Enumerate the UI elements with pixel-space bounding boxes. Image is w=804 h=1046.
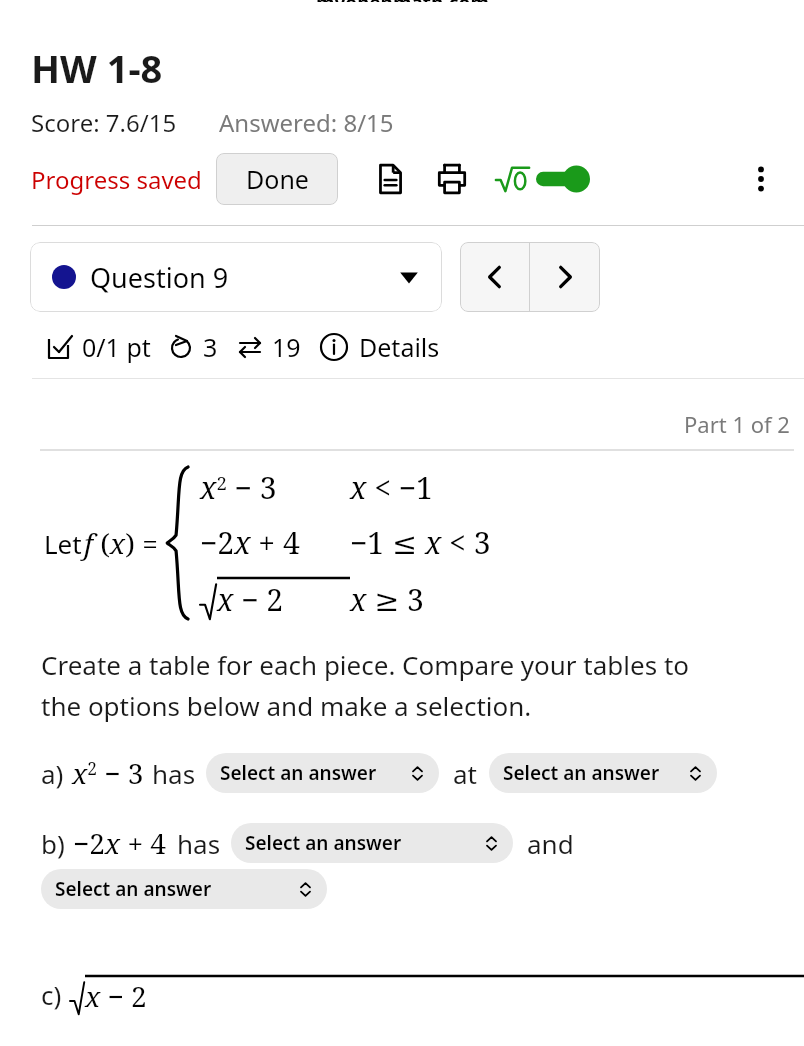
button[interactable]: Question 9 bbox=[30, 242, 442, 312]
button[interactable]: Math keyboard toggle bbox=[494, 162, 590, 196]
staticText: x − 2 bbox=[85, 977, 147, 1015]
button[interactable]: Done bbox=[216, 153, 338, 205]
staticText: 0/1 pt bbox=[82, 330, 151, 364]
staticText: Progress saved bbox=[31, 163, 202, 196]
button[interactable]: Next question bbox=[530, 242, 600, 312]
button[interactable]: Select an answer bbox=[489, 753, 717, 793]
staticText: x2 − 3 bbox=[200, 467, 277, 508]
button[interactable]: Select an answer bbox=[231, 823, 513, 863]
staticText: myopenmath.com bbox=[316, 0, 489, 2]
staticText: b) bbox=[41, 826, 65, 861]
button[interactable]: Previous question bbox=[460, 242, 529, 312]
staticText: −2x + 4 bbox=[73, 824, 167, 862]
staticText: c) bbox=[41, 977, 62, 1012]
staticText: Answered: 8/15 bbox=[219, 106, 394, 139]
staticText: and bbox=[527, 826, 574, 861]
staticText: Select an answer bbox=[503, 760, 660, 786]
staticText: Part 1 of 2 bbox=[684, 409, 790, 439]
staticText: −2x + 4 bbox=[200, 522, 300, 563]
staticText: Select an answer bbox=[245, 830, 402, 856]
staticText: has bbox=[152, 756, 196, 791]
staticText: Done bbox=[246, 162, 309, 196]
staticText: Score: 7.6/15 bbox=[31, 106, 177, 139]
staticText: HW 1-8 bbox=[31, 42, 163, 94]
button[interactable]: Select an answer bbox=[41, 869, 327, 909]
button[interactable]: Details bbox=[319, 330, 440, 364]
button[interactable]: More options bbox=[744, 162, 778, 196]
staticText: Select an answer bbox=[220, 760, 377, 786]
staticText: x ≥ 3 bbox=[350, 579, 424, 620]
staticText: Let bbox=[44, 526, 82, 561]
staticText: Question 9 bbox=[90, 259, 229, 296]
staticText: a) bbox=[41, 756, 64, 791]
button[interactable]: Document bbox=[372, 161, 408, 197]
staticText: x2 − 3 bbox=[72, 754, 144, 792]
staticText: −1 ≤ x < 3 bbox=[350, 522, 491, 563]
staticText: Create a table for each piece. Compare y… bbox=[41, 647, 690, 682]
staticText: f (x) = bbox=[84, 524, 158, 562]
button[interactable]: Select an answer bbox=[206, 753, 439, 793]
staticText: the options below and make a selection. bbox=[41, 688, 532, 723]
staticText: has bbox=[177, 826, 221, 861]
button[interactable]: Print bbox=[434, 161, 470, 197]
staticText: x < −1 bbox=[350, 467, 433, 508]
staticText: Select an answer bbox=[55, 876, 212, 902]
staticText: 19 bbox=[272, 330, 301, 364]
staticText: x − 2 bbox=[217, 579, 284, 620]
staticText: at bbox=[453, 756, 477, 791]
staticText: 3 bbox=[203, 330, 218, 364]
staticText: Details bbox=[359, 330, 440, 364]
